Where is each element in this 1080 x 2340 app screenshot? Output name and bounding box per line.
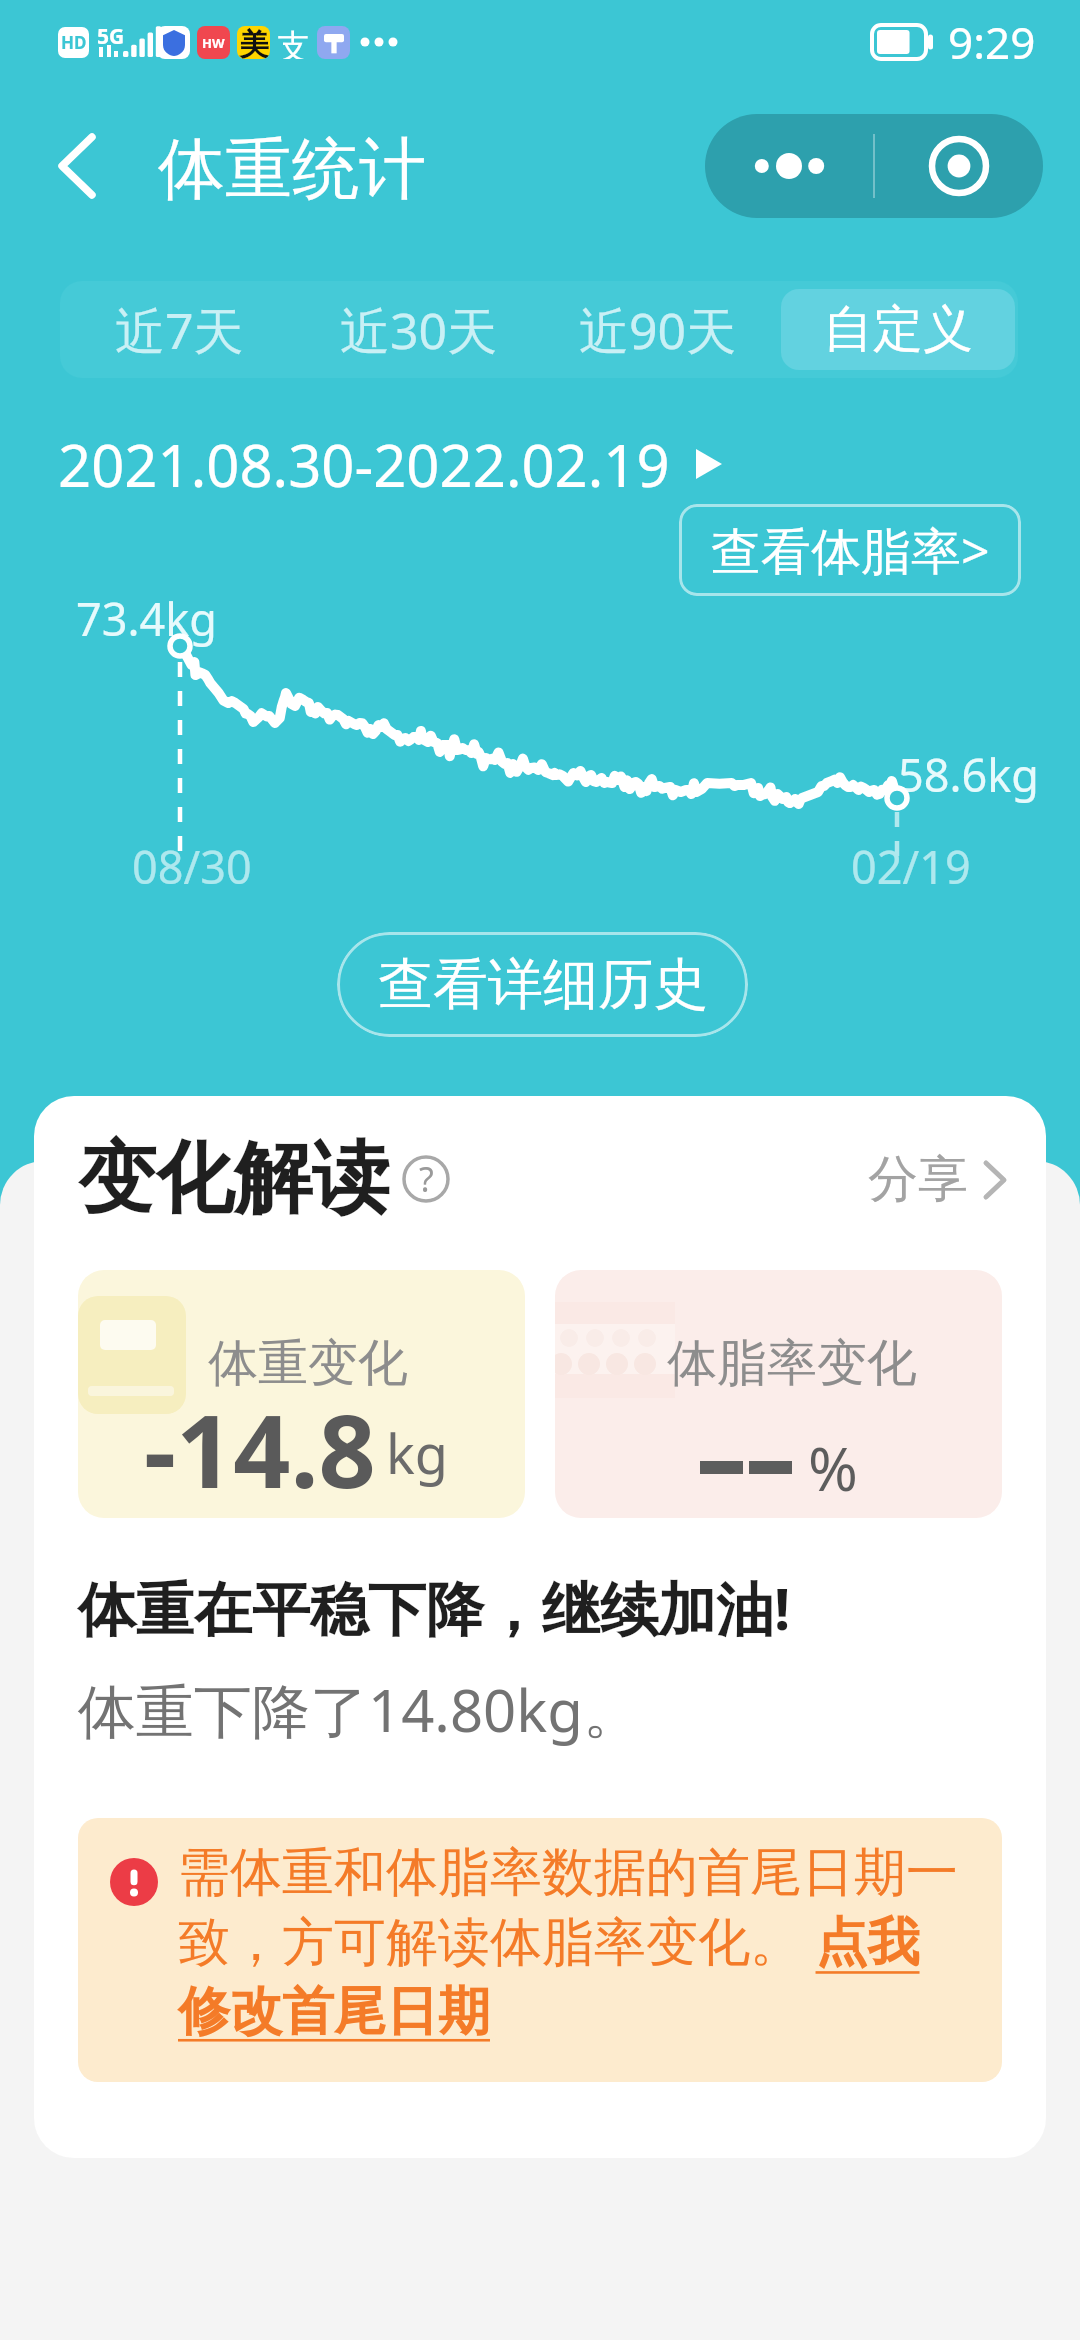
staticText: 体重下降了14.80kg。: [78, 1670, 641, 1749]
staticText: -14.8: [144, 1381, 376, 1504]
staticText: 体重变化: [208, 1332, 408, 1395]
staticText: 体重在平稳下降，继续加油!: [78, 1568, 791, 1647]
button[interactable]: Back: [29, 118, 125, 214]
button[interactable]: 需体重和体脂率数据的首尾日期一 致，方可解读体脂率变化。 点我 修改首尾日期: [78, 1818, 1002, 2082]
button[interactable]: 体重变化: [78, 1270, 525, 1518]
staticText: HW: [202, 34, 225, 52]
staticText: 58.6kg: [898, 744, 1039, 805]
staticText: 近90天: [579, 296, 737, 364]
staticText: 变化解读: [78, 1130, 390, 1228]
staticText: 近7天: [115, 296, 244, 364]
button[interactable]: 体脂率变化: [555, 1270, 1002, 1518]
button[interactable]: Close: [875, 114, 1043, 218]
staticText: 查看详细历史: [378, 950, 708, 1019]
staticText: 支: [277, 26, 310, 59]
button[interactable]: 近30天: [302, 289, 535, 370]
staticText: 02/19: [851, 836, 971, 897]
staticText: %: [808, 1427, 858, 1509]
button[interactable]: 查看详细历史: [337, 932, 748, 1037]
staticText: 体重统计: [158, 127, 426, 211]
button[interactable]: 分享: [868, 1148, 1006, 1211]
staticText: 73.4kg: [76, 588, 217, 649]
staticText: ?: [419, 1156, 434, 1202]
staticText: 美: [239, 26, 269, 59]
staticText: HD: [61, 31, 87, 54]
staticText: 体脂率变化: [667, 1332, 917, 1395]
button[interactable]: 自定义: [781, 289, 1015, 370]
button[interactable]: 近7天: [63, 289, 296, 370]
staticText: 查看体脂率>: [711, 516, 990, 584]
button[interactable]: 近90天: [541, 289, 775, 370]
button[interactable]: Help: [398, 1151, 454, 1207]
button[interactable]: 2021.08.30-2022.02.19: [58, 422, 722, 506]
staticText: 9:29: [948, 12, 1036, 72]
button[interactable]: More options: [705, 114, 873, 218]
button[interactable]: 查看体脂率>: [679, 504, 1021, 596]
staticText: 5G: [97, 22, 125, 51]
staticText: 分享: [868, 1148, 968, 1211]
staticText: kg: [386, 1416, 449, 1490]
staticText: 需体重和体脂率数据的首尾日期一 致，方可解读体脂率变化。 点我 修改首尾日期: [178, 1840, 988, 2044]
staticText: 08/30: [132, 836, 252, 897]
staticText: 自定义: [823, 298, 973, 361]
staticText: 2021.08.30-2022.02.19: [58, 425, 670, 504]
staticText: 近30天: [340, 296, 498, 364]
